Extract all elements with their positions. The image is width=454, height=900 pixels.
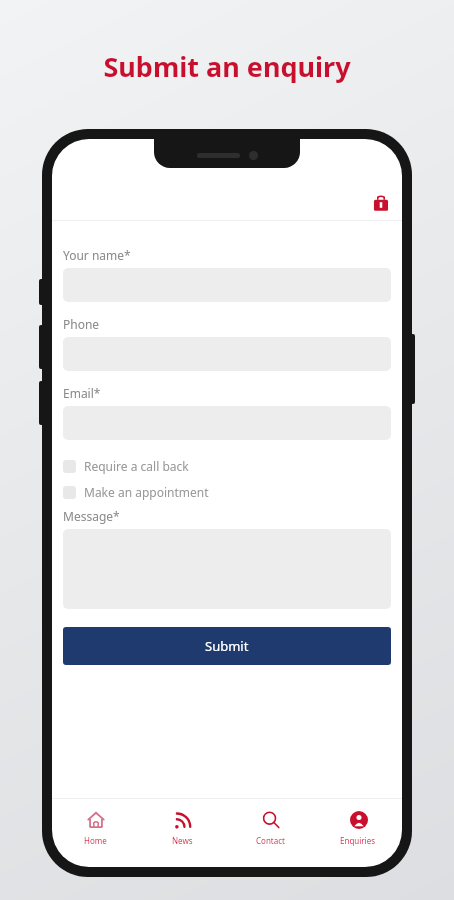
button[interactable]: Require a call back xyxy=(63,458,391,474)
staticText: Submit an enquiry xyxy=(103,48,351,85)
staticText: Email* xyxy=(63,385,101,401)
staticText: Phone xyxy=(63,316,100,332)
button[interactable]: Enquiries xyxy=(314,799,402,855)
staticText: Your name* xyxy=(63,247,131,263)
staticText: Home xyxy=(84,835,107,846)
button[interactable]: Home xyxy=(52,799,139,855)
staticText: Enquiries xyxy=(340,835,376,846)
staticText: News xyxy=(172,835,193,846)
staticText: Submit xyxy=(205,637,249,655)
button[interactable]: Basket xyxy=(370,192,392,214)
button[interactable]: News xyxy=(139,799,226,855)
button[interactable]: Contact xyxy=(226,799,314,855)
staticText: Make an appointment xyxy=(84,484,209,500)
staticText: Message* xyxy=(63,508,120,524)
button[interactable]: Submit xyxy=(63,627,391,665)
staticText: Contact xyxy=(256,835,285,846)
button[interactable]: Make an appointment xyxy=(63,484,391,500)
staticText: Require a call back xyxy=(84,458,189,474)
